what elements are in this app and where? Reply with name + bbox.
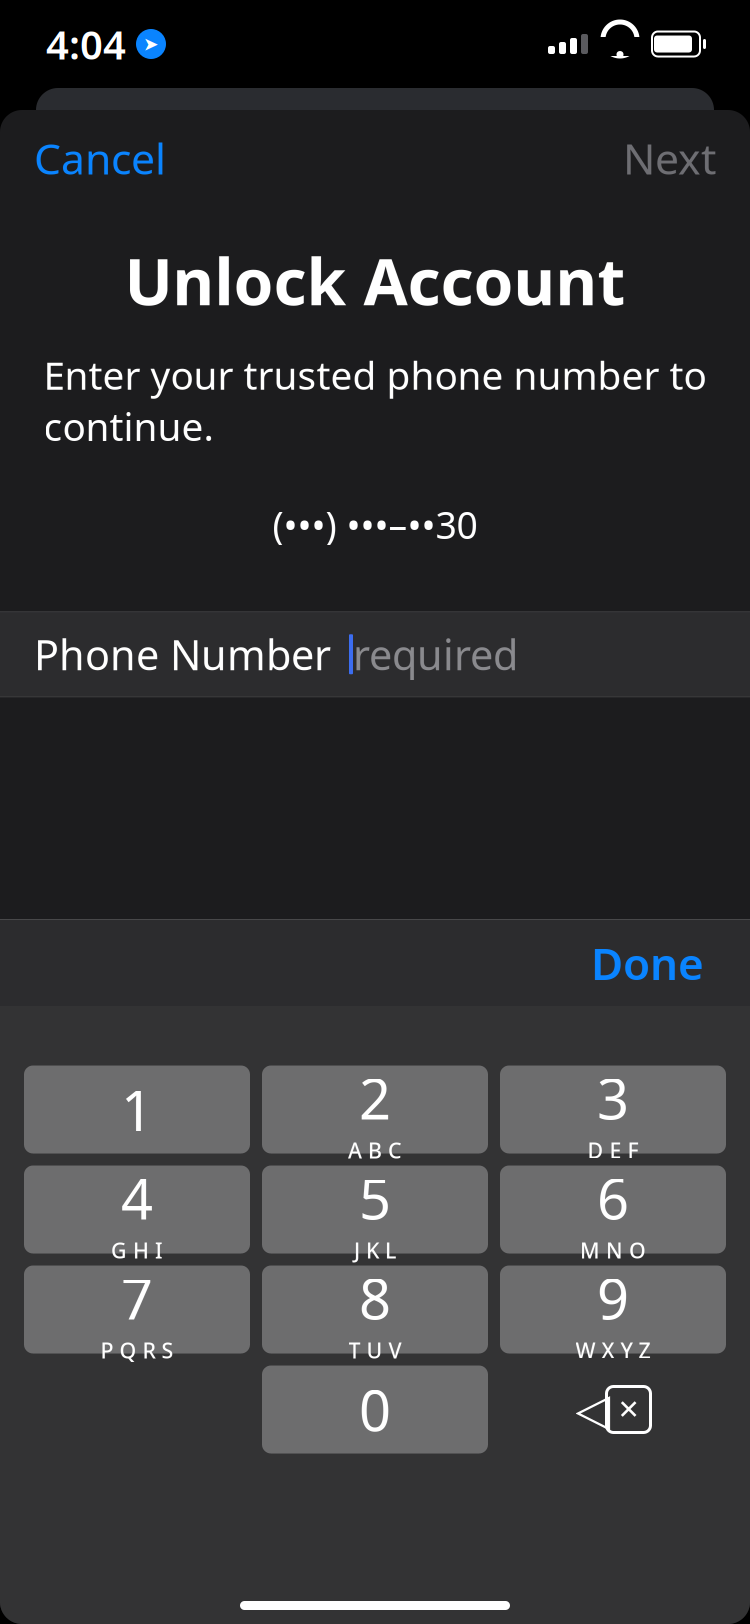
button[interactable]: 4	[24, 1165, 250, 1253]
button[interactable]: 6	[500, 1165, 726, 1253]
staticText: 6	[597, 1161, 629, 1235]
staticText: Enter your trusted phone number to conti…	[43, 349, 706, 452]
staticText: 5	[359, 1161, 391, 1235]
staticText: 2	[359, 1061, 391, 1135]
staticText: ✕	[617, 1394, 639, 1425]
button[interactable]: 9	[500, 1265, 726, 1353]
staticText: ➤	[143, 33, 159, 55]
button[interactable]: 1	[24, 1065, 250, 1153]
staticText: ◁	[575, 1384, 610, 1435]
button[interactable]: 7	[24, 1265, 250, 1353]
staticText: A B C	[348, 1136, 402, 1164]
staticText: Phone Number	[34, 627, 331, 682]
staticText: Cancel	[34, 130, 166, 186]
staticText: T U V	[348, 1336, 401, 1364]
staticText: 8	[359, 1261, 391, 1335]
staticText: D E F	[587, 1136, 638, 1164]
staticText: 0	[359, 1372, 391, 1447]
button[interactable]: 8	[262, 1265, 488, 1353]
staticText: 1	[121, 1072, 153, 1147]
button[interactable]: 5	[262, 1165, 488, 1253]
button[interactable]: 0	[262, 1365, 488, 1453]
staticText: G H I	[111, 1236, 163, 1264]
staticText: J K L	[354, 1236, 396, 1264]
button[interactable]: Cancel	[24, 118, 176, 198]
staticText: Next	[623, 130, 716, 186]
staticText: W X Y Z	[575, 1336, 650, 1364]
staticText: required	[353, 627, 518, 682]
staticText: 4:04	[46, 17, 126, 70]
button[interactable]: 2	[262, 1065, 488, 1153]
staticText: P Q R S	[100, 1336, 173, 1364]
button[interactable]: Delete	[500, 1365, 726, 1453]
button[interactable]: Next	[613, 118, 726, 198]
staticText: 4	[121, 1161, 153, 1235]
staticText: (•••) •••–••30	[272, 500, 477, 549]
staticText: 9	[597, 1261, 629, 1335]
staticText: M N O	[580, 1236, 646, 1264]
staticText: 3	[597, 1061, 629, 1135]
staticText: 7	[121, 1261, 153, 1335]
button[interactable]: 3	[500, 1065, 726, 1153]
button[interactable]: Done	[577, 920, 718, 1006]
staticText: Unlock Account	[124, 238, 625, 323]
staticText: Done	[591, 934, 704, 992]
